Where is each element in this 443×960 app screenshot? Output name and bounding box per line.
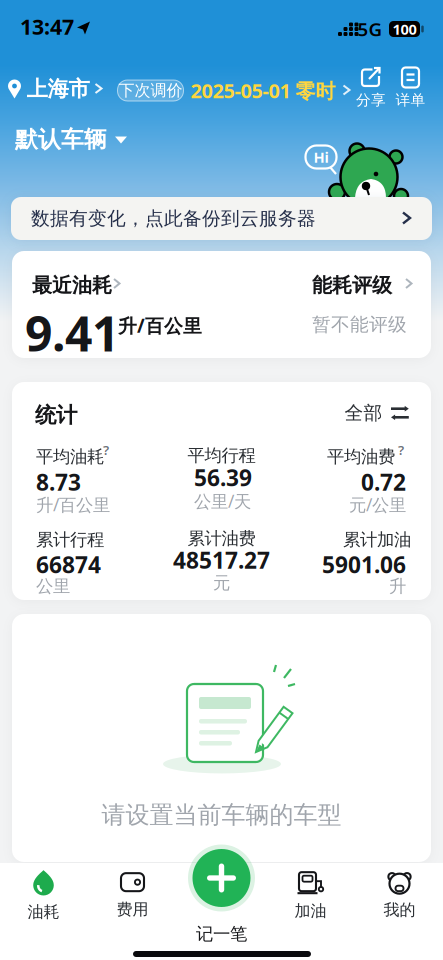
staticText: 我的: [383, 900, 415, 920]
staticText: 最近油耗: [32, 273, 112, 298]
staticText: ?: [103, 441, 109, 459]
staticText: 0.72: [361, 467, 406, 497]
staticText: 暂不能评级: [312, 313, 407, 336]
staticText: 100: [392, 19, 416, 39]
button[interactable]: 我的: [383, 872, 415, 920]
button[interactable]: 默认车辆: [15, 126, 127, 153]
staticText: 2025-05-01 零时: [190, 77, 335, 104]
button[interactable]: 下次调价: [117, 77, 350, 104]
staticText: 9.41: [25, 301, 119, 365]
staticText: 48517.27: [173, 545, 270, 575]
staticText: 累计油费: [187, 528, 255, 549]
staticText: 加油: [294, 901, 326, 921]
staticText: 全部: [344, 401, 382, 424]
staticText: 56.39: [194, 462, 252, 492]
staticText: 统计: [35, 402, 77, 428]
button[interactable]: 加油: [294, 871, 326, 921]
staticText: 平均油耗: [36, 446, 104, 467]
button[interactable]: 数据有变化，点此备份到云服务器: [11, 197, 432, 240]
staticText: 油耗: [27, 902, 59, 922]
staticText: 分享: [356, 91, 386, 109]
staticText: Hi: [313, 147, 328, 167]
staticText: 5901.06: [322, 549, 406, 580]
staticText: 66874: [36, 549, 101, 580]
staticText: 累计行程: [36, 529, 104, 550]
staticText: 累计加油: [343, 529, 411, 550]
staticText: 详单: [395, 91, 425, 109]
button[interactable]: 分享: [356, 67, 386, 109]
button[interactable]: 油耗: [27, 870, 59, 922]
button[interactable]: 请设置当前车辆的车型: [12, 614, 431, 862]
staticText: 公里/天: [194, 489, 251, 512]
staticText: 升/百公里: [118, 313, 202, 338]
button[interactable]: 费用: [116, 873, 148, 919]
staticText: 默认车辆: [15, 126, 107, 153]
staticText: 元: [213, 572, 230, 594]
button[interactable]: 最近油耗: [12, 251, 431, 358]
staticText: 上海市: [26, 76, 89, 102]
staticText: 数据有变化，点此备份到云服务器: [31, 207, 316, 230]
staticText: 能耗评级: [312, 273, 392, 298]
button[interactable]: 详单: [395, 67, 425, 109]
staticText: ?: [398, 441, 404, 459]
staticText: 升/百公里: [36, 493, 110, 516]
staticText: 费用: [116, 900, 148, 919]
button[interactable]: 全部: [344, 401, 409, 424]
staticText: 升: [389, 575, 406, 597]
staticText: 请设置当前车辆的车型: [101, 800, 341, 830]
button[interactable]: [188, 844, 255, 911]
staticText: 13:47: [20, 12, 74, 41]
staticText: 记一笔: [196, 923, 247, 945]
staticText: 平均行程: [187, 445, 255, 466]
staticText: 下次调价: [118, 81, 182, 100]
staticText: 元/公里: [349, 493, 406, 516]
staticText: 平均油费: [327, 446, 395, 467]
button[interactable]: 上海市: [7, 76, 102, 102]
staticText: 8.73: [36, 467, 81, 497]
staticText: 公里: [36, 575, 70, 597]
staticText: 5G: [357, 17, 382, 41]
